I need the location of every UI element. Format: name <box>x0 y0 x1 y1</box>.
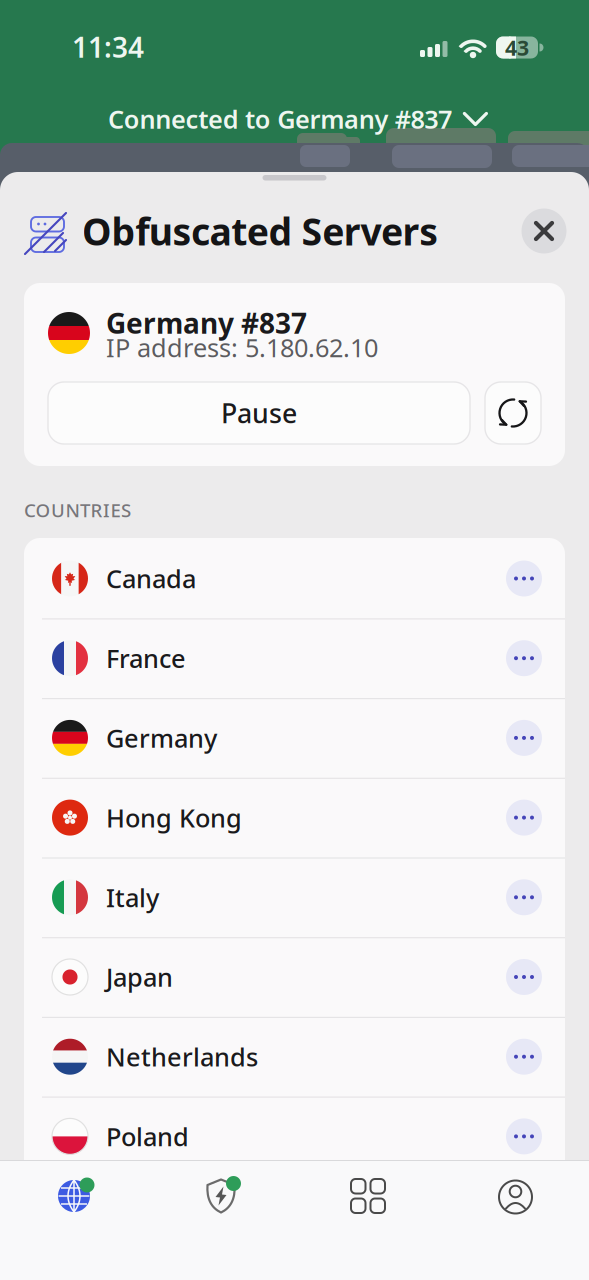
button[interactable]: Japan <box>24 937 565 1016</box>
button[interactable]: More options for Italy <box>506 879 542 915</box>
button[interactable]: More options for Germany <box>506 720 542 756</box>
staticText: Germany #837 <box>106 304 307 342</box>
button[interactable]: Canada <box>24 539 565 618</box>
staticText: Pause <box>221 395 297 431</box>
staticText: COUNTRIES <box>24 498 131 522</box>
staticText: Canada <box>106 562 196 595</box>
staticText: France <box>106 641 186 675</box>
button[interactable]: Close <box>521 208 566 253</box>
button[interactable]: Reconnect <box>485 382 541 444</box>
staticText: 43 <box>505 33 529 62</box>
staticText: IP address: 5.180.62.10 <box>106 331 378 364</box>
button[interactable]: Hong Kong <box>24 778 565 857</box>
button[interactable]: Map <box>42 1171 106 1221</box>
button[interactable]: More options for Japan <box>506 959 542 995</box>
staticText: Netherlands <box>106 1040 258 1073</box>
button[interactable]: Poland <box>24 1097 565 1176</box>
button[interactable]: Profile <box>483 1171 547 1221</box>
staticText: Poland <box>106 1120 189 1153</box>
staticText: Connected to Germany #837 <box>108 102 452 136</box>
button[interactable]: Germany <box>24 698 565 777</box>
button[interactable]: More options for Poland <box>506 1118 542 1154</box>
button[interactable]: More options for Canada <box>506 560 542 596</box>
button[interactable]: Apps <box>336 1171 400 1221</box>
button[interactable]: More options for Hong Kong <box>506 800 542 836</box>
button[interactable]: Threat Protection <box>189 1171 253 1221</box>
staticText: Germany <box>106 721 217 755</box>
staticText: Japan <box>106 960 173 994</box>
button[interactable]: Connected to Germany #837 <box>108 97 488 141</box>
staticText: Hong Kong <box>106 801 242 834</box>
staticText: Obfuscated Servers <box>82 206 438 256</box>
button[interactable]: Netherlands <box>24 1017 565 1096</box>
button[interactable]: More options for France <box>506 640 542 676</box>
button[interactable]: Italy <box>24 858 565 937</box>
button[interactable]: France <box>24 619 565 698</box>
staticText: Italy <box>106 880 159 914</box>
staticText: 11:34 <box>72 28 144 66</box>
button[interactable]: Pause <box>48 382 470 444</box>
button[interactable]: More options for Netherlands <box>506 1039 542 1075</box>
